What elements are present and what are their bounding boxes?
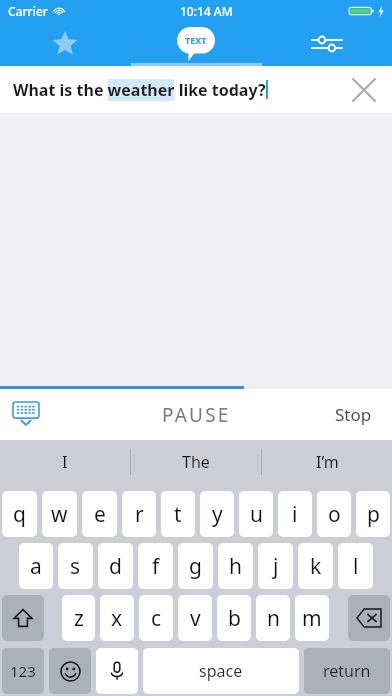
staticText: What is the weather like today?	[13, 79, 266, 101]
button[interactable]: b	[217, 595, 251, 641]
button[interactable]: Favorites	[0, 22, 130, 66]
button[interactable]: l	[338, 543, 373, 589]
button[interactable]: d	[98, 543, 133, 589]
staticText: g	[189, 552, 202, 581]
button[interactable]: Shift	[2, 595, 44, 641]
button[interactable]: q	[2, 491, 37, 537]
button[interactable]: i	[278, 491, 312, 537]
button[interactable]: x	[100, 595, 134, 641]
staticText: y	[212, 500, 223, 529]
staticText: Carrier	[8, 3, 48, 19]
button[interactable]: h	[218, 543, 253, 589]
button[interactable]: PAUSE	[162, 402, 231, 428]
staticText: I’m	[316, 451, 339, 473]
staticText: 123	[10, 661, 36, 681]
button[interactable]: 123	[2, 648, 44, 694]
staticText: n	[267, 604, 280, 633]
button[interactable]: e	[82, 491, 117, 537]
staticText: PAUSE	[162, 402, 231, 428]
staticText: u	[250, 500, 263, 529]
staticText: a	[30, 552, 42, 581]
button[interactable]: space	[143, 648, 299, 694]
staticText: h	[229, 552, 242, 581]
staticText: Stop	[335, 403, 372, 426]
staticText: TEXT	[185, 34, 207, 46]
button[interactable]: Settings	[261, 22, 392, 66]
button[interactable]: n	[256, 595, 290, 641]
staticText: b	[228, 604, 241, 633]
button[interactable]: c	[139, 595, 173, 641]
button[interactable]: o	[317, 491, 351, 537]
staticText: c	[151, 604, 162, 633]
button[interactable]: Stop	[329, 397, 378, 432]
staticText: z	[74, 604, 84, 633]
button[interactable]: a	[19, 543, 53, 589]
button[interactable]: The	[131, 440, 261, 484]
staticText: space	[199, 660, 243, 682]
staticText: d	[109, 552, 122, 581]
button[interactable]: Backspace	[348, 595, 390, 641]
button[interactable]: g	[178, 543, 213, 589]
button[interactable]: w	[42, 491, 77, 537]
button[interactable]: Dictation	[96, 648, 138, 694]
staticText: p	[367, 500, 380, 529]
button[interactable]: z	[62, 595, 95, 641]
staticText: The	[182, 451, 210, 473]
button[interactable]: f	[138, 543, 173, 589]
staticText: i	[292, 500, 298, 529]
staticText: j	[273, 552, 279, 581]
staticText: t	[174, 500, 182, 529]
button[interactable]: y	[200, 491, 234, 537]
staticText: o	[328, 500, 341, 529]
button[interactable]: Clear text	[344, 70, 384, 110]
button[interactable]: k	[298, 543, 333, 589]
staticText: l	[353, 552, 359, 581]
button[interactable]: r	[122, 491, 156, 537]
staticText: r	[135, 500, 144, 529]
staticText: return	[323, 660, 371, 682]
button[interactable]: m	[295, 595, 329, 641]
button[interactable]: p	[356, 491, 390, 537]
button[interactable]: Hide keyboard	[6, 395, 46, 435]
staticText: v	[190, 604, 201, 633]
button[interactable]: t	[161, 491, 195, 537]
staticText: x	[111, 604, 123, 633]
staticText: e	[94, 500, 106, 529]
button[interactable]: I	[0, 440, 130, 484]
staticText: q	[13, 500, 26, 529]
staticText: f	[152, 552, 160, 581]
staticText: s	[70, 552, 81, 581]
button[interactable]: Text	[130, 22, 261, 66]
staticText: I	[62, 451, 68, 473]
staticText: w	[51, 500, 68, 529]
button[interactable]: v	[178, 595, 212, 641]
button[interactable]: j	[258, 543, 293, 589]
button[interactable]: s	[58, 543, 93, 589]
button[interactable]: I’m	[262, 440, 392, 484]
staticText: k	[310, 552, 322, 581]
staticText: m	[302, 604, 322, 633]
button[interactable]: u	[239, 491, 273, 537]
staticText: 10:14 AM	[180, 3, 233, 19]
button[interactable]: return	[304, 648, 390, 694]
button[interactable]: Emoji	[49, 648, 91, 694]
